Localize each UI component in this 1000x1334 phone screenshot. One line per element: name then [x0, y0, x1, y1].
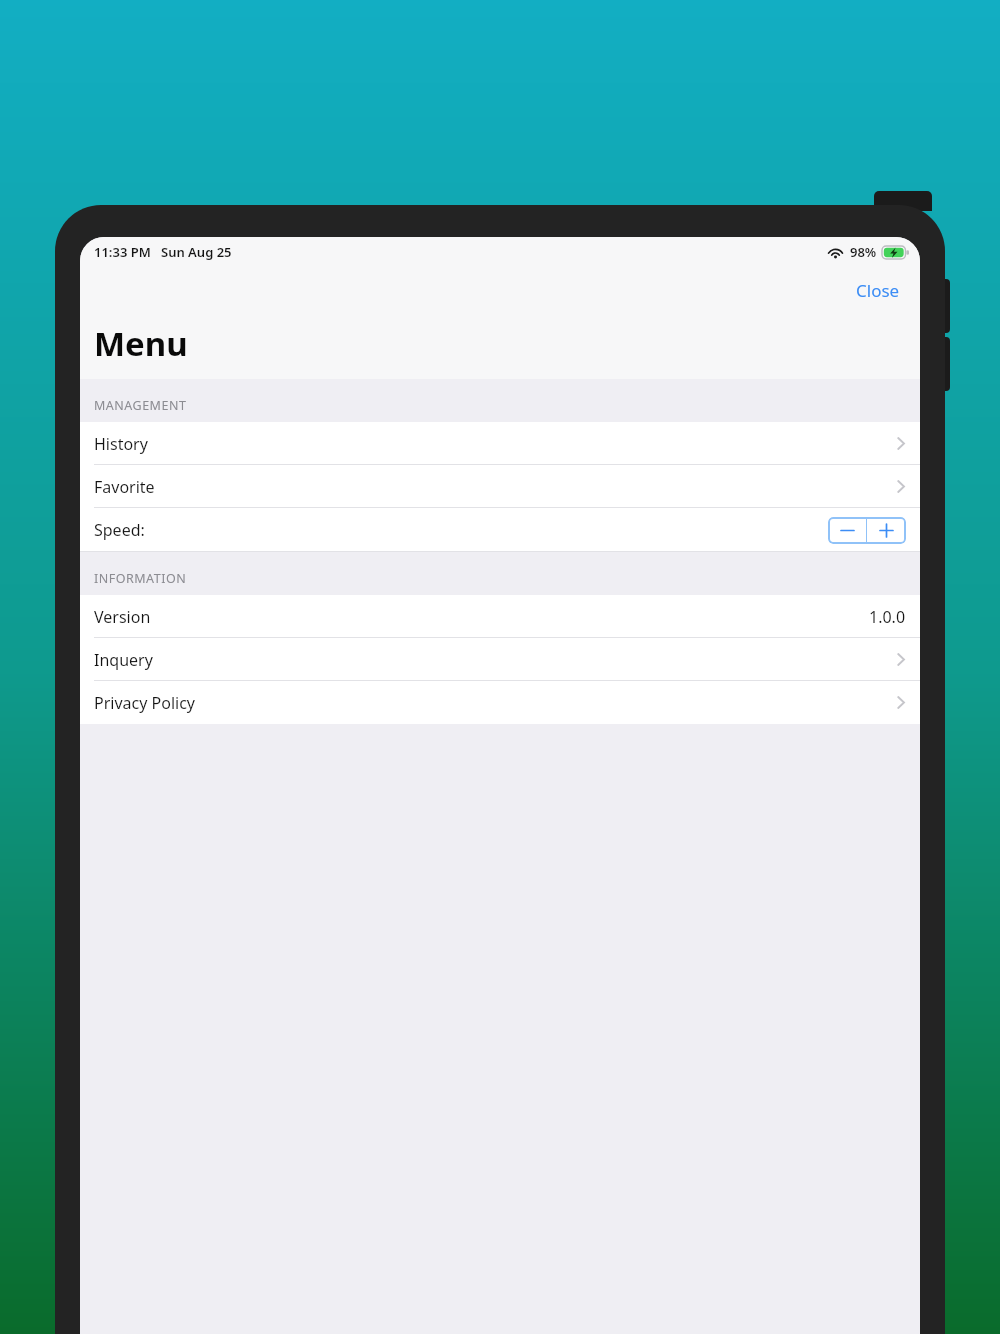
staticText: 98%	[850, 243, 877, 261]
button[interactable]: Version	[80, 595, 920, 638]
staticText: Inquery	[94, 649, 153, 671]
button[interactable]: Inquery	[80, 638, 920, 681]
staticText: 1.0.0	[869, 606, 906, 628]
staticText: Privacy Policy	[94, 692, 195, 714]
button[interactable]: Favorite	[80, 465, 920, 508]
staticText: Version	[94, 606, 151, 628]
button[interactable]: Close	[844, 271, 912, 310]
staticText: History	[94, 433, 148, 455]
staticText: Sun Aug 25	[161, 243, 232, 261]
staticText: Speed:	[94, 519, 145, 541]
button[interactable]: Increase speed	[867, 517, 906, 544]
staticText: Favorite	[94, 476, 155, 498]
button[interactable]: History	[80, 422, 920, 465]
staticText: INFORMATION	[94, 570, 187, 587]
staticText: Close	[856, 279, 900, 302]
button[interactable]: Privacy Policy	[80, 681, 920, 724]
staticText: MANAGEMENT	[94, 397, 187, 414]
staticText: Menu	[94, 321, 188, 366]
staticText: 11:33 PM	[94, 243, 151, 261]
button[interactable]: Decrease speed	[828, 517, 866, 544]
